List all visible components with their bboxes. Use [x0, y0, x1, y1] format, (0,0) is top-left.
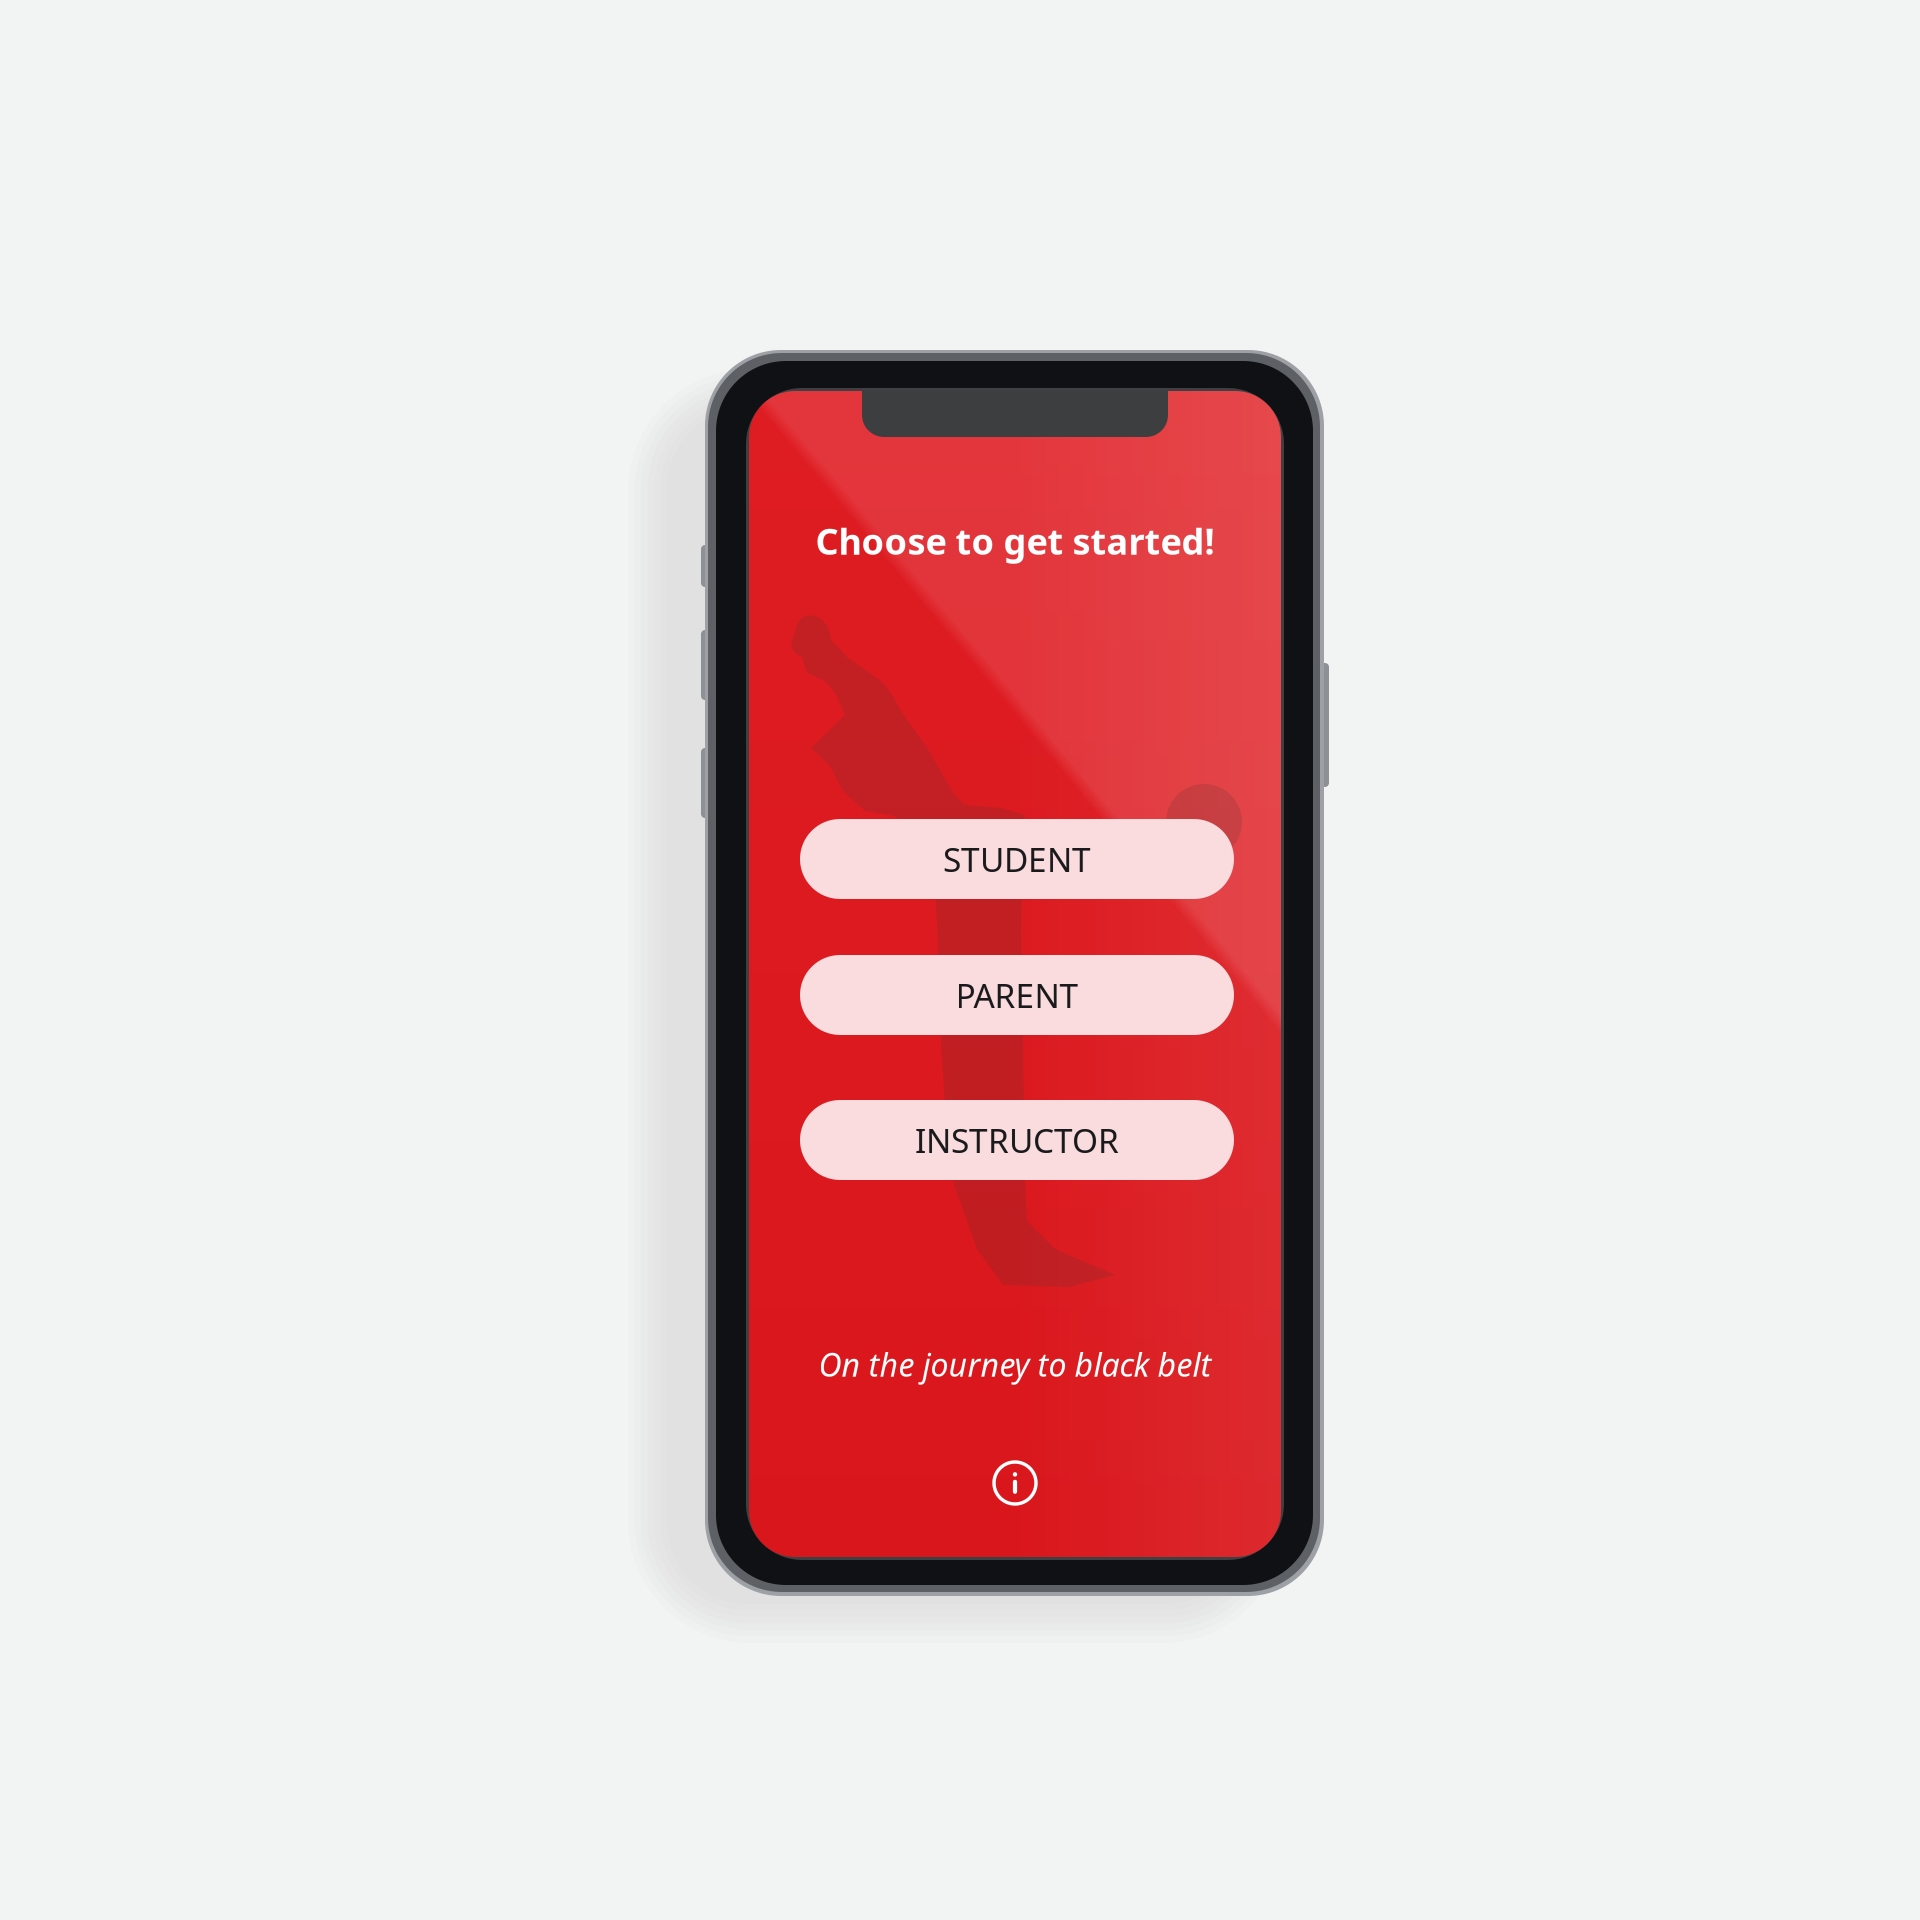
button[interactable]: STUDENT	[800, 819, 1234, 899]
button[interactable]: INSTRUCTOR	[800, 1100, 1234, 1180]
button[interactable]: Information	[989, 1457, 1041, 1509]
staticText: Choose to get started!	[815, 517, 1214, 565]
staticText: PARENT	[955, 973, 1078, 1017]
button[interactable]: PARENT	[800, 955, 1234, 1035]
staticText: INSTRUCTOR	[915, 1118, 1119, 1162]
staticText: STUDENT	[943, 837, 1091, 881]
staticText: On the journey to black belt	[818, 1343, 1211, 1385]
